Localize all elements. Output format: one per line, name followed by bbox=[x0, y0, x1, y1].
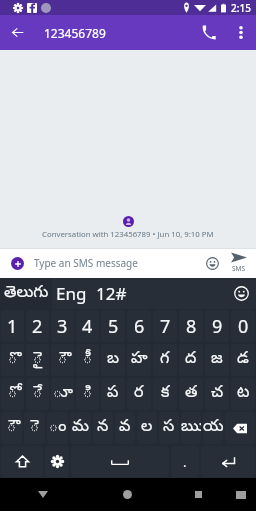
staticText: హ bbox=[131, 349, 148, 371]
button[interactable]: ద bbox=[179, 344, 203, 376]
button[interactable]: 5 bbox=[101, 310, 125, 342]
staticText: . bbox=[183, 453, 187, 471]
button[interactable]: Send SMS bbox=[222, 248, 256, 278]
button[interactable]: ం bbox=[47, 412, 68, 444]
staticText: 5 bbox=[108, 314, 119, 339]
staticText: ట bbox=[237, 383, 250, 405]
button[interactable]: Recent apps bbox=[170, 478, 226, 511]
button[interactable]: 4 bbox=[76, 310, 99, 342]
button[interactable]: ో bbox=[1, 378, 24, 410]
staticText: 1 bbox=[7, 314, 18, 339]
button[interactable]: న bbox=[93, 412, 113, 444]
staticText: SMS bbox=[232, 264, 246, 273]
staticText: న bbox=[97, 417, 109, 439]
button[interactable]: 3 bbox=[51, 310, 74, 342]
button[interactable]: . bbox=[171, 446, 199, 477]
button[interactable]: ౌ bbox=[1, 412, 22, 444]
staticText: 2 bbox=[32, 314, 43, 339]
staticText: 2:15 bbox=[231, 1, 251, 15]
staticText: ో bbox=[8, 383, 18, 405]
button[interactable]: క bbox=[153, 378, 177, 410]
staticText: 12# bbox=[96, 282, 127, 305]
other: Keyboard settings bbox=[44, 445, 70, 478]
button[interactable]: ప bbox=[101, 378, 125, 410]
button[interactable]: Home bbox=[85, 478, 170, 511]
staticText: ల bbox=[141, 417, 153, 439]
staticText: 8 bbox=[186, 314, 197, 339]
staticText: ఋ bbox=[181, 417, 201, 439]
staticText: గ bbox=[160, 349, 170, 371]
staticText: డ bbox=[237, 349, 249, 371]
button[interactable]: ల bbox=[137, 412, 157, 444]
staticText: Type an SMS message bbox=[34, 256, 196, 270]
staticText: బ bbox=[107, 349, 120, 371]
button[interactable] bbox=[45, 446, 69, 477]
button[interactable]: బ bbox=[101, 344, 125, 376]
button[interactable] bbox=[201, 446, 255, 477]
staticText: 7 bbox=[160, 314, 171, 339]
button[interactable]: తెలుగు bbox=[0, 278, 52, 309]
button[interactable]: 12# bbox=[90, 278, 132, 309]
button[interactable]: Back bbox=[0, 478, 85, 511]
staticText: ర bbox=[134, 383, 144, 405]
button[interactable]: Delete bbox=[225, 412, 255, 444]
button[interactable]: 0 bbox=[231, 310, 255, 342]
other: Space bbox=[70, 445, 170, 478]
staticText: 3 bbox=[57, 314, 68, 339]
staticText: ూ bbox=[53, 383, 73, 405]
staticText: ీ bbox=[83, 349, 93, 371]
staticText: ౌ bbox=[58, 349, 68, 371]
button[interactable]: Navigate up bbox=[0, 15, 35, 50]
button[interactable]: ీ bbox=[76, 344, 99, 376]
button[interactable]: స bbox=[159, 412, 179, 444]
staticText: 6 bbox=[134, 314, 145, 339]
button[interactable] bbox=[1, 446, 43, 477]
staticText: తెలుగు bbox=[4, 283, 49, 305]
button[interactable]: ూ bbox=[51, 378, 74, 410]
button[interactable]: హ bbox=[127, 344, 151, 376]
staticText: ద bbox=[185, 349, 197, 371]
button[interactable]: ట bbox=[231, 378, 255, 410]
button[interactable]: Call bbox=[191, 15, 226, 50]
button[interactable]: చ bbox=[205, 378, 229, 410]
staticText: ొ bbox=[8, 349, 18, 371]
button[interactable]: ౌ bbox=[51, 344, 74, 376]
button[interactable]: Attach bbox=[0, 248, 34, 278]
button[interactable]: 9 bbox=[205, 310, 229, 342]
button[interactable]: మ bbox=[70, 412, 91, 444]
button[interactable]: 1 bbox=[1, 310, 24, 342]
button[interactable]: గ bbox=[153, 344, 177, 376]
staticText: ౌ bbox=[7, 417, 17, 439]
button[interactable]: డ bbox=[231, 344, 255, 376]
button[interactable]: త bbox=[179, 378, 203, 410]
staticText: ప bbox=[107, 383, 119, 405]
button[interactable]: ె bbox=[24, 412, 45, 444]
button[interactable]: ఋ bbox=[181, 412, 201, 444]
button[interactable]: 8 bbox=[179, 310, 203, 342]
button[interactable]: Emoji keyboard bbox=[226, 278, 256, 309]
button[interactable]: య bbox=[203, 412, 223, 444]
staticText: 123456789 bbox=[44, 25, 106, 41]
staticText: క bbox=[161, 383, 170, 405]
button[interactable]: వ bbox=[115, 412, 135, 444]
button[interactable]: 6 bbox=[127, 310, 151, 342]
button[interactable]: Change keyboard bbox=[226, 478, 256, 511]
button[interactable]: 7 bbox=[153, 310, 177, 342]
button[interactable]: ొ bbox=[1, 344, 24, 376]
button[interactable] bbox=[71, 446, 169, 477]
button[interactable]: జ bbox=[205, 344, 229, 376]
button[interactable]: ై bbox=[26, 344, 49, 376]
button[interactable]: More options bbox=[226, 15, 256, 50]
staticText: స bbox=[163, 417, 175, 439]
button[interactable]: 2 bbox=[26, 310, 49, 342]
button[interactable]: Eng bbox=[52, 278, 90, 309]
button[interactable]: ి bbox=[76, 378, 99, 410]
staticText: ై bbox=[33, 349, 43, 371]
staticText: ె bbox=[30, 417, 40, 439]
staticText: 4 bbox=[82, 314, 93, 339]
button[interactable]: Insert emoji bbox=[203, 248, 222, 278]
button[interactable]: ే bbox=[26, 378, 49, 410]
staticText: య bbox=[203, 417, 223, 439]
staticText: ి bbox=[83, 383, 93, 405]
button[interactable]: ర bbox=[127, 378, 151, 410]
